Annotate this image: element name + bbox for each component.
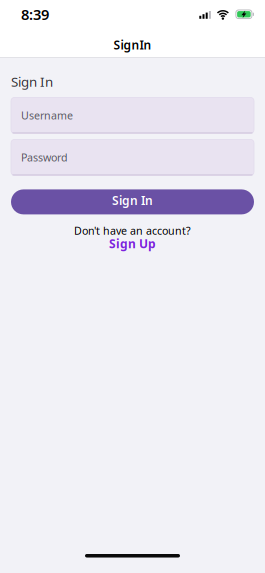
staticText: SignIn — [113, 37, 151, 53]
staticText: Don't have an account? — [74, 223, 191, 238]
staticText: Username — [21, 108, 73, 122]
staticText: Sign In — [112, 192, 153, 208]
button[interactable]: Sign In — [11, 189, 254, 214]
staticText: Sign Up — [109, 236, 156, 251]
staticText: Password — [21, 150, 68, 164]
staticText: Sign In — [11, 73, 53, 90]
staticText: 8:39 — [21, 4, 49, 24]
button[interactable]: Sign Up — [109, 236, 156, 251]
